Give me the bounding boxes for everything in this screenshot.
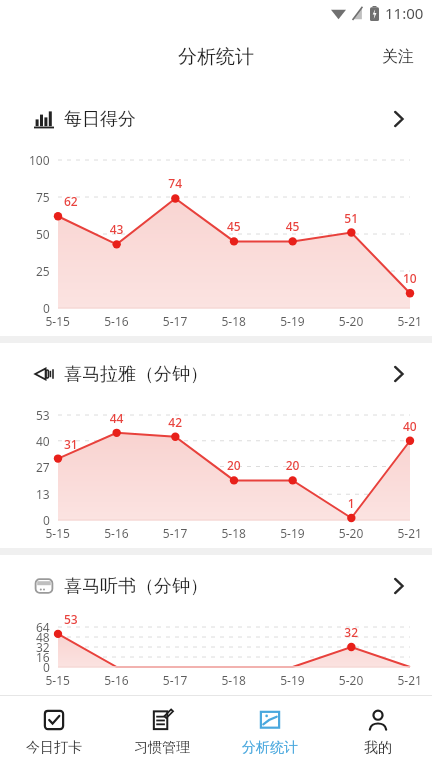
staticText: 分析统计 bbox=[178, 45, 254, 69]
button[interactable]: 今日打卡 bbox=[0, 696, 108, 768]
staticText: 分析统计 bbox=[242, 739, 298, 757]
button[interactable]: 喜马拉雅（分钟） bbox=[0, 343, 432, 405]
other: 展开 喜马听书（分钟） bbox=[386, 573, 412, 599]
other: 展开 每日得分 bbox=[386, 106, 412, 132]
staticText: 习惯管理 bbox=[134, 739, 190, 757]
button[interactable]: 我的 bbox=[324, 696, 432, 768]
staticText: 喜马拉雅（分钟） bbox=[64, 363, 208, 386]
staticText: 今日打卡 bbox=[26, 739, 82, 757]
staticText: 喜马听书（分钟） bbox=[64, 575, 208, 598]
other: 展开 喜马拉雅（分钟） bbox=[386, 361, 412, 387]
button[interactable]: 喜马听书（分钟） bbox=[0, 555, 432, 617]
staticText: 11:00 bbox=[385, 3, 424, 23]
button[interactable]: 关注 bbox=[364, 35, 432, 79]
staticText: 关注 bbox=[382, 47, 414, 67]
button[interactable]: 每日得分 bbox=[0, 88, 432, 150]
button[interactable]: 习惯管理 bbox=[108, 696, 216, 768]
button[interactable]: 分析统计 bbox=[216, 696, 324, 768]
staticText: 我的 bbox=[364, 739, 392, 757]
staticText: 每日得分 bbox=[64, 108, 136, 131]
